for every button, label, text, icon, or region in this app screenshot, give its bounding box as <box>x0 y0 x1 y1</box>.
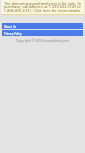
staticText: Privacy Policy <box>4 32 22 36</box>
button[interactable]: Domain for sale notice <box>1 0 84 14</box>
staticText: About Us <box>4 25 17 29</box>
staticText: 1-866-835-6731. Click here for more deta… <box>1 8 84 13</box>
staticText: The domain bensonfamily.net is for sale.… <box>1 1 84 6</box>
button[interactable]: About Us <box>2 23 83 29</box>
staticText: purchase, call Afternic at 1-339-222-514… <box>1 4 84 9</box>
button[interactable]: Privacy Policy <box>2 30 83 36</box>
staticText: Copyright © 2018 bensonfamily.net <box>1 39 84 43</box>
